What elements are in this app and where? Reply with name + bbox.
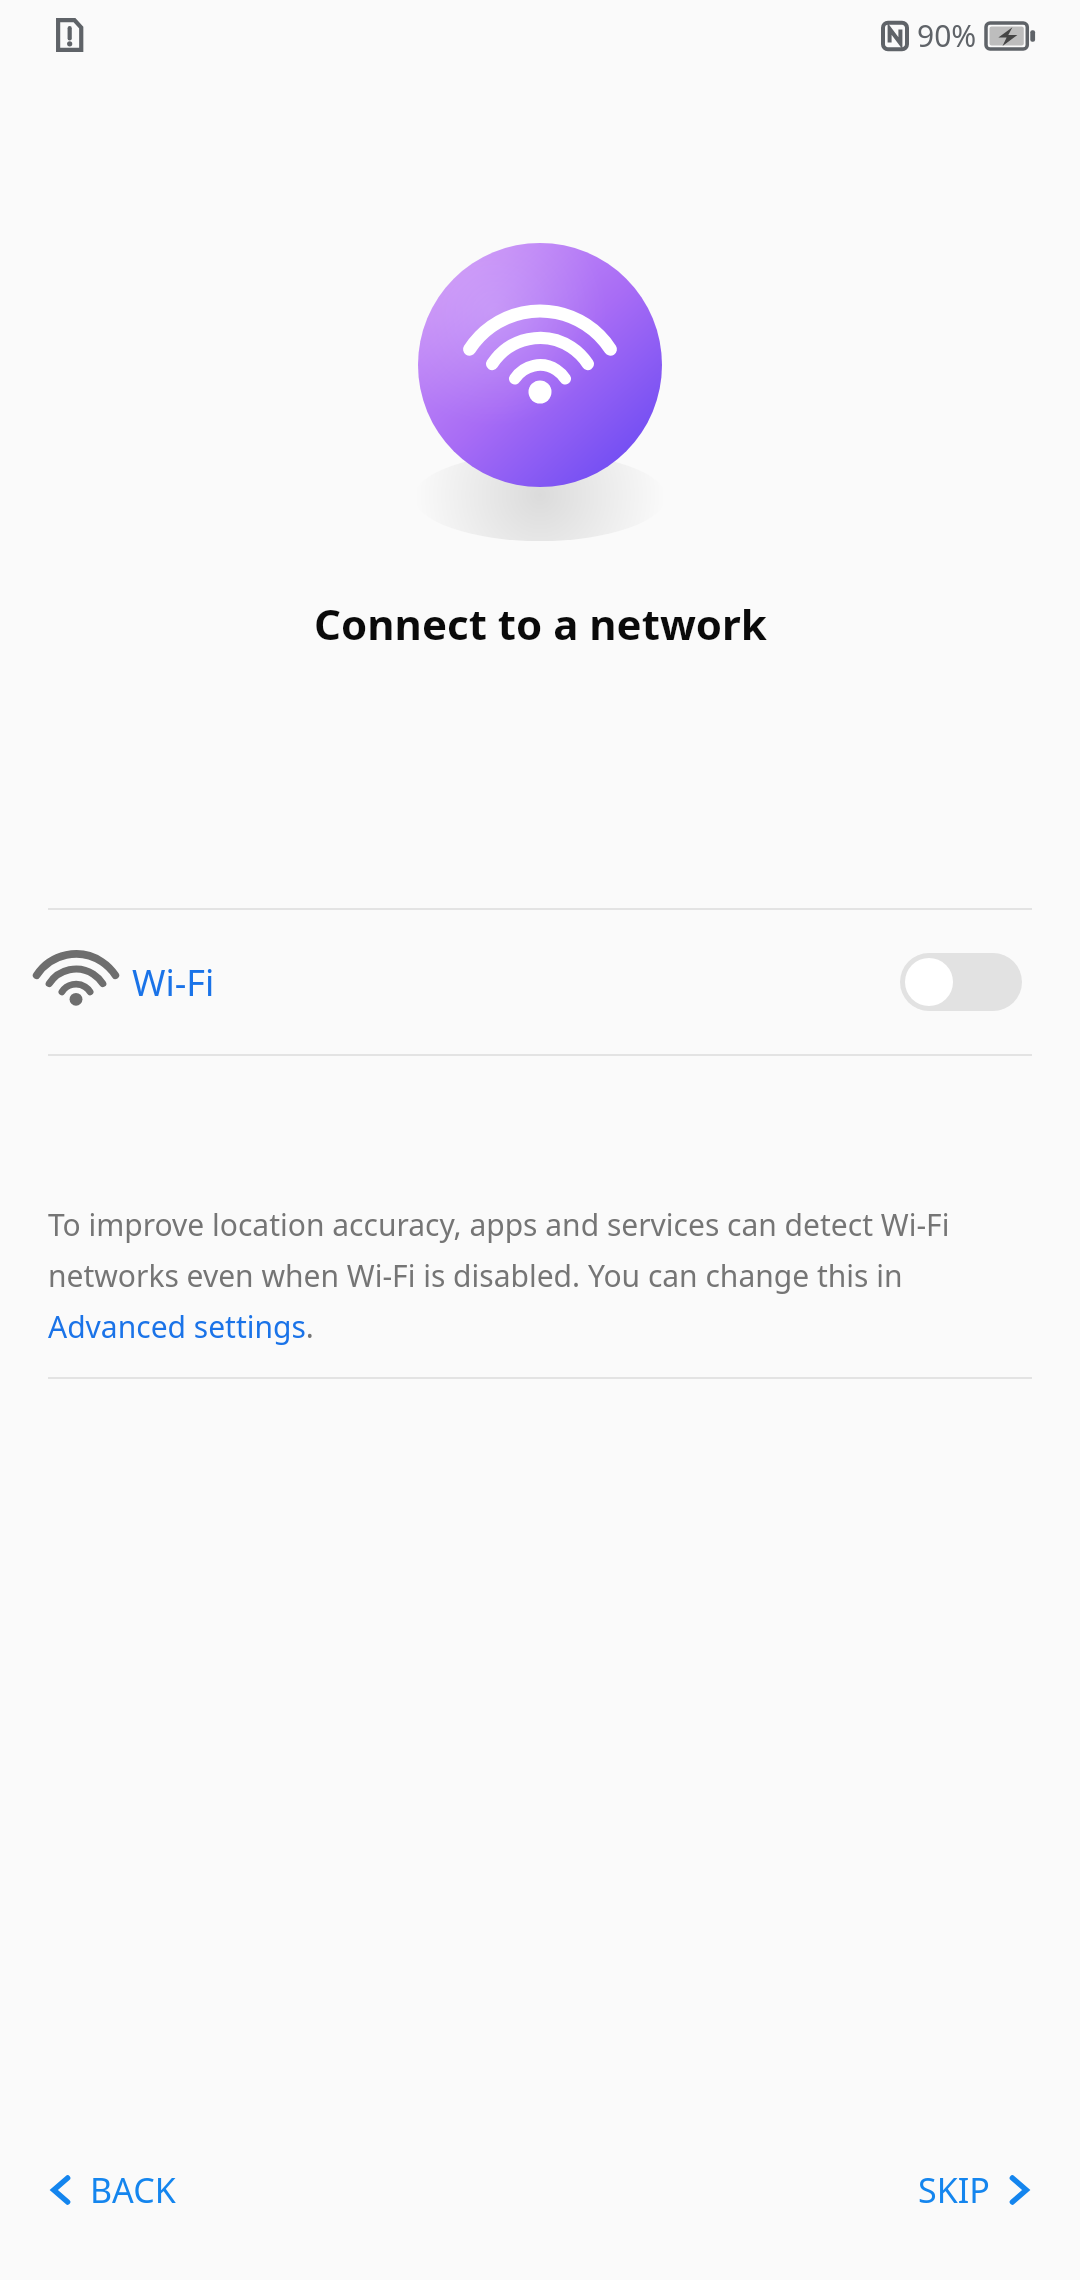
button[interactable]: Wi-Fi (0, 910, 1080, 1054)
button[interactable]: BACK (28, 2151, 194, 2229)
staticText: Wi-Fi (132, 958, 215, 1007)
button[interactable]: SKIP (900, 2151, 1052, 2229)
staticText: To improve location accuracy, apps and s… (48, 1204, 1032, 1347)
button[interactable]: Toggle Wi-Fi (890, 939, 1032, 1025)
staticText: 90% (917, 15, 977, 56)
staticText: Connect to a network (314, 595, 767, 652)
staticText: SKIP (918, 2167, 990, 2213)
staticText: BACK (90, 2167, 176, 2213)
